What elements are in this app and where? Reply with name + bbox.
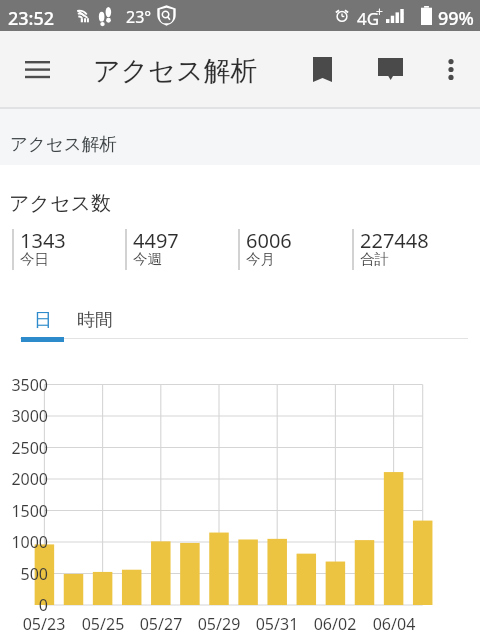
staticText: 合計 — [360, 250, 389, 268]
staticText: アクセス解析 — [10, 133, 117, 155]
staticText: アクセス数 — [9, 191, 111, 216]
staticText: 日 — [34, 309, 52, 332]
staticText: 2000 — [2, 468, 48, 490]
staticText: 3000 — [2, 405, 48, 427]
staticText: 05/27 — [131, 613, 191, 635]
staticText: 1343 — [20, 227, 66, 254]
button[interactable]: More options — [427, 42, 474, 96]
staticText: 99% — [438, 6, 474, 31]
button[interactable]: Menu — [13, 42, 61, 96]
staticText: + — [376, 3, 383, 19]
staticText: 今週 — [133, 250, 162, 268]
staticText: 06/04 — [364, 613, 424, 635]
staticText: 4G — [357, 7, 380, 30]
button[interactable]: 時間 — [64, 307, 126, 333]
staticText: 3500 — [2, 374, 48, 396]
staticText: 今日 — [20, 250, 49, 268]
staticText: 05/29 — [189, 613, 249, 635]
staticText: 06/02 — [305, 613, 365, 635]
staticText: 4497 — [133, 227, 179, 254]
staticText: 6006 — [246, 227, 292, 254]
staticText: 今月 — [246, 250, 275, 268]
staticText: 1000 — [2, 531, 48, 553]
staticText: 227448 — [360, 227, 429, 254]
staticText: 時間 — [77, 309, 113, 332]
staticText: 05/23 — [14, 613, 74, 635]
staticText: 500 — [2, 563, 48, 585]
button[interactable]: 日 — [21, 307, 64, 333]
staticText: 05/25 — [73, 613, 133, 635]
button[interactable]: Messages — [366, 42, 415, 96]
staticText: 1500 — [2, 500, 48, 522]
staticText: 2500 — [2, 437, 48, 459]
button[interactable]: Bookmark — [299, 42, 346, 96]
staticText: 0 — [2, 594, 48, 616]
staticText: 05/31 — [247, 613, 307, 635]
staticText: アクセス解析 — [93, 54, 258, 88]
staticText: 23:52 — [8, 6, 55, 31]
staticText: 23° — [126, 6, 152, 28]
